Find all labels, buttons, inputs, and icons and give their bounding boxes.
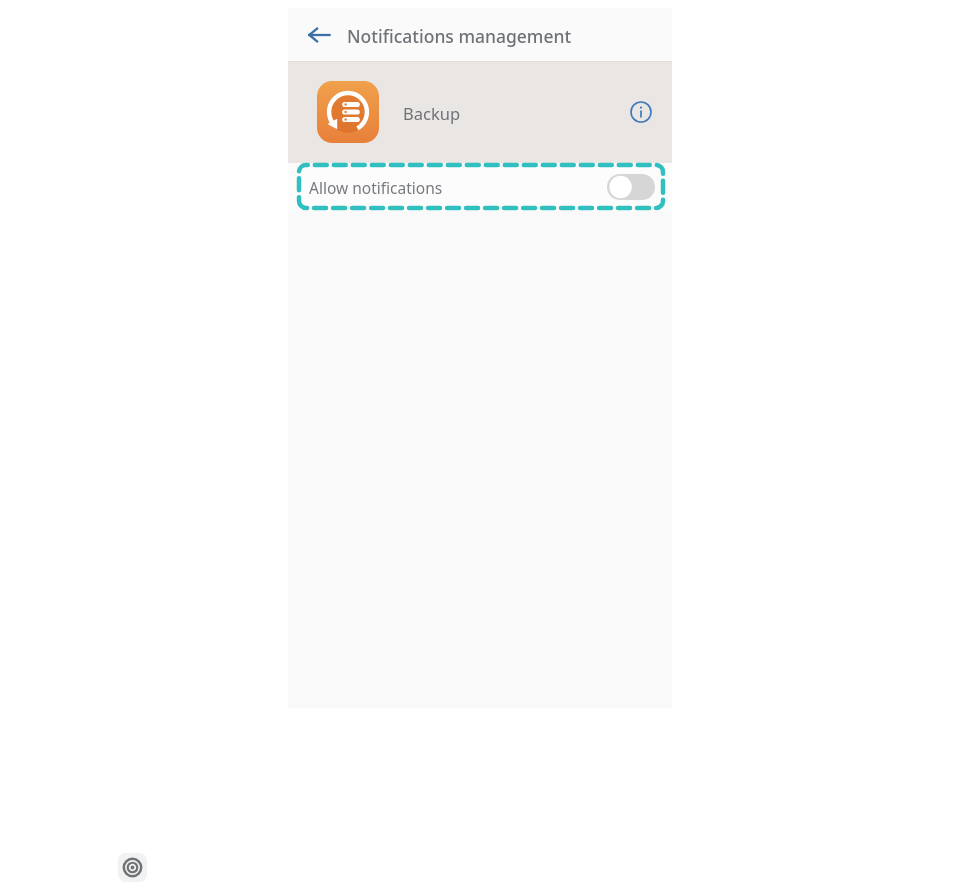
button[interactable]: Back [298,14,340,56]
staticText: Backup [403,102,461,124]
staticText: Notifications management [347,24,572,48]
button[interactable]: App info [622,93,660,131]
staticText: Allow notifications [309,177,443,198]
button[interactable]: Screenshot tool [118,853,147,882]
button[interactable]: Allow notifications [288,163,672,211]
